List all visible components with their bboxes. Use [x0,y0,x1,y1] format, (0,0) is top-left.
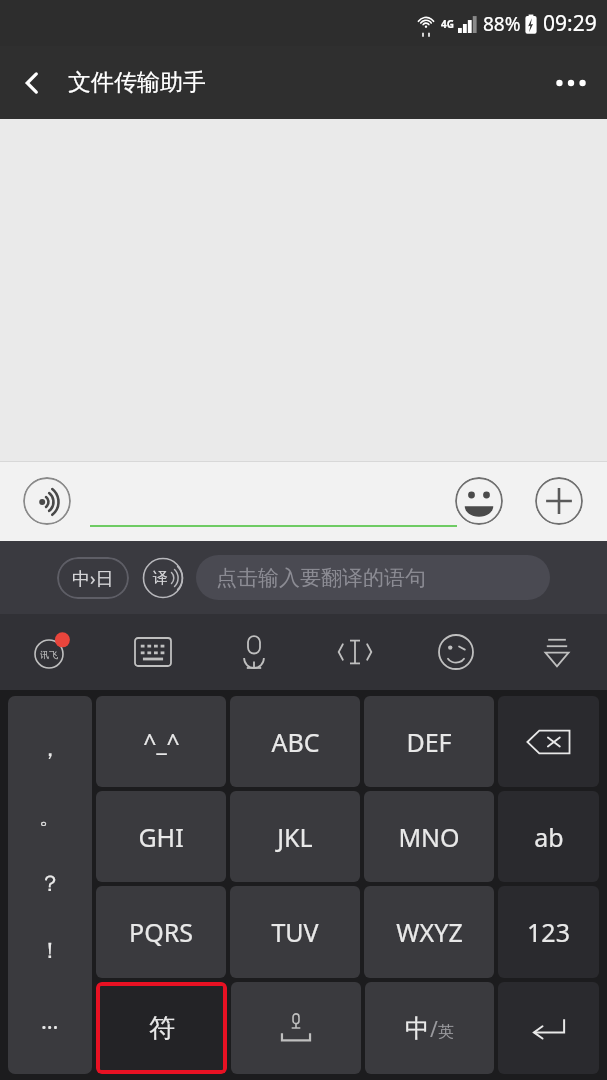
staticText: ， [39,735,61,763]
button[interactable]: MNO [364,791,494,882]
staticText: 中 [405,1013,430,1044]
staticText: ？ [39,870,61,898]
staticText: 点击输入要翻译的语句 [216,565,426,591]
staticText: DEF [406,725,452,759]
button[interactable]: ABC [230,696,360,787]
staticText: / [430,1015,438,1044]
staticText: ！ [39,937,61,965]
staticText: 。 [39,803,61,831]
staticText: 09:29 [543,9,597,38]
button[interactable]: JKL [230,791,360,882]
staticText: MNO [398,820,460,854]
button[interactable]: DEF [364,696,494,787]
staticText: GHI [138,820,184,854]
button[interactable]: Space [231,982,361,1074]
button[interactable]: Keyboard [102,614,203,690]
button[interactable]: Translate [142,557,184,599]
button[interactable]: ab [498,791,599,882]
button[interactable]: 123 [498,886,599,978]
button[interactable]: Back [8,59,56,107]
staticText: ABC [271,725,320,759]
staticText: WXYZ [396,915,463,949]
staticText: … [41,1005,59,1035]
staticText: 88% [483,11,521,37]
staticText: 讯飞 [40,649,58,660]
button[interactable]: GHI [96,791,226,882]
staticText: 123 [527,915,570,949]
staticText: JKL [277,820,313,854]
button[interactable]: Voice input [23,477,71,525]
staticText: ^_^ [143,726,180,757]
button[interactable]: 符 [96,982,227,1074]
button[interactable]: PQRS [96,886,226,978]
button[interactable] [90,475,457,527]
staticText: PQRS [129,915,193,949]
button[interactable]: Voice input [203,614,304,690]
staticText: 文件传输助手 [68,68,206,97]
button[interactable]: Cursor control [304,614,405,690]
staticText: 中›日 [72,566,114,591]
staticText: 符 [149,1012,175,1045]
button[interactable]: TUV [230,886,360,978]
staticText: ab [534,820,564,854]
staticText: TUV [271,915,319,949]
button[interactable]: ^_^ [96,696,226,787]
button[interactable]: Emoji [405,614,506,690]
button[interactable]: More functions [535,477,583,525]
button[interactable]: WXYZ [364,886,494,978]
button[interactable]: 中 [365,982,494,1074]
button[interactable]: Emoji [455,477,503,525]
button[interactable]: 中›日 [57,557,129,599]
staticText: 译 [153,569,168,588]
button[interactable]: Input method [0,614,102,690]
staticText: 英 [438,1022,454,1042]
button[interactable]: ， [8,696,92,1074]
staticText: 4G [441,17,454,31]
button[interactable]: Enter [498,982,599,1074]
button[interactable]: Hide keyboard [506,614,607,690]
button[interactable]: 点击输入要翻译的语句 [196,555,550,600]
button[interactable]: Backspace [498,696,599,787]
button[interactable]: More options [543,55,599,111]
